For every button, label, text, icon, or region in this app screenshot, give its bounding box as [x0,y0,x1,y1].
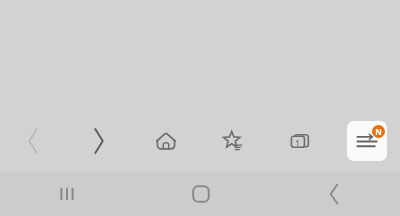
staticText: 1 [295,138,300,149]
button[interactable]: Bookmarks [199,110,266,172]
button[interactable]: Forward [66,110,132,172]
staticText: N [375,126,382,137]
button[interactable]: Recent apps [0,172,134,216]
button[interactable]: Back [267,172,400,216]
button[interactable]: Home [132,110,199,172]
button[interactable]: Menu [333,110,400,172]
button[interactable]: Tabs [266,110,333,172]
button[interactable]: Home [134,172,267,216]
